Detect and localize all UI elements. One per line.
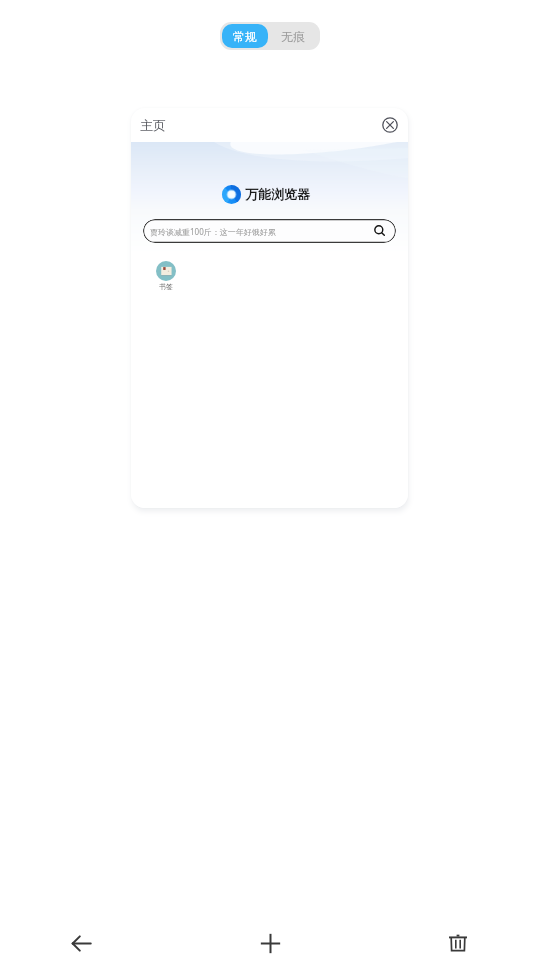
button[interactable]: 书签: [147, 261, 185, 291]
button[interactable]: 常规: [222, 24, 268, 48]
button[interactable]: 主页: [131, 108, 408, 508]
button[interactable]: 贾玲谈减重100斤：这一年好饿好累: [143, 219, 396, 243]
staticText: 贾玲谈减重100斤：这一年好饿好累: [150, 226, 276, 237]
staticText: 书签: [159, 282, 173, 291]
staticText: 主页: [140, 117, 166, 133]
button[interactable]: 无痕: [268, 24, 318, 48]
button[interactable]: New tab: [247, 920, 293, 963]
staticText: 无痕: [281, 29, 305, 44]
button[interactable]: Back: [58, 920, 104, 963]
staticText: 万能浏览器: [245, 186, 310, 202]
button[interactable]: Close all tabs: [435, 920, 481, 963]
staticText: 常规: [233, 29, 257, 44]
button[interactable]: Close tab: [380, 115, 400, 135]
